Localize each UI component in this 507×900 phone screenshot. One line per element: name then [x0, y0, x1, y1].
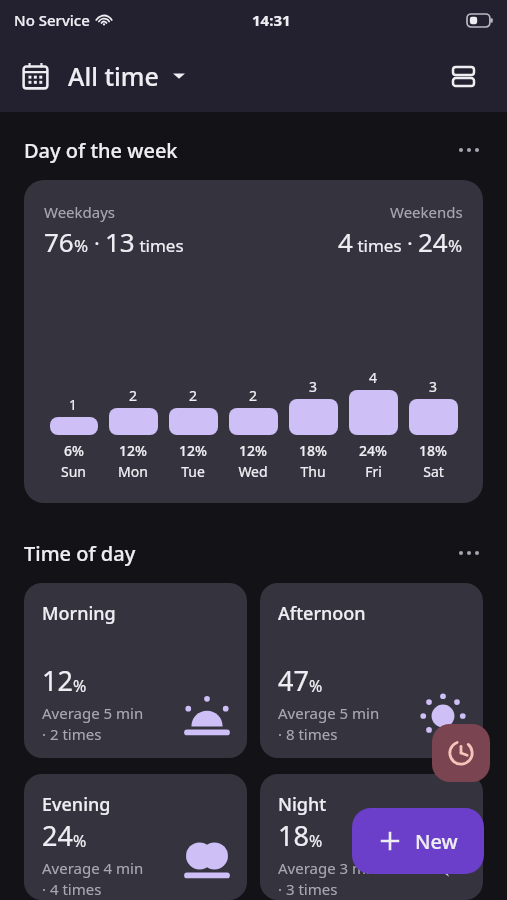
- staticText: 24: [418, 224, 448, 259]
- staticText: 18%: [299, 441, 327, 460]
- staticText: 3: [429, 377, 438, 396]
- staticText: Mon: [118, 462, 148, 481]
- staticText: times: [353, 234, 402, 257]
- staticText: 24: [42, 817, 73, 854]
- staticText: · 3 times: [278, 879, 338, 899]
- staticText: Evening: [42, 792, 111, 817]
- button[interactable]: Weekdays: [24, 180, 483, 503]
- button[interactable]: Evening: [24, 774, 247, 900]
- staticText: times: [135, 234, 184, 257]
- staticText: 18: [278, 817, 309, 854]
- staticText: 2: [249, 386, 258, 405]
- staticText: 12%: [179, 441, 207, 460]
- staticText: ·: [89, 230, 105, 257]
- staticText: Fri: [365, 462, 382, 481]
- staticText: · 4 times: [42, 879, 102, 899]
- button[interactable]: Afternoon: [260, 583, 483, 758]
- staticText: 4: [369, 368, 378, 387]
- staticText: Average 5 min: [42, 703, 144, 723]
- button[interactable]: New: [352, 808, 484, 874]
- staticText: Morning: [42, 601, 116, 626]
- staticText: Weekends: [390, 202, 463, 222]
- staticText: Wed: [238, 462, 268, 481]
- staticText: Time of day: [24, 540, 136, 567]
- staticText: 3: [309, 377, 318, 396]
- staticText: Thu: [300, 462, 326, 481]
- staticText: Night: [278, 792, 327, 817]
- staticText: 1: [69, 395, 78, 414]
- staticText: 2: [189, 386, 198, 405]
- staticText: Day of the week: [24, 137, 178, 164]
- staticText: Sat: [423, 462, 444, 481]
- staticText: 76: [44, 224, 74, 259]
- staticText: 47: [278, 662, 309, 699]
- button[interactable]: Morning: [24, 583, 247, 758]
- staticText: · 8 times: [278, 724, 338, 744]
- staticText: All time: [68, 59, 159, 93]
- button[interactable]: Start timer: [432, 724, 490, 782]
- staticText: ·: [402, 230, 418, 257]
- staticText: 13: [105, 224, 135, 259]
- staticText: %: [448, 234, 463, 257]
- staticText: Sun: [61, 462, 86, 481]
- staticText: · 2 times: [42, 724, 102, 744]
- staticText: 6%: [64, 441, 84, 460]
- staticText: Average 3 min: [278, 858, 380, 878]
- staticText: 12%: [239, 441, 267, 460]
- staticText: Average 4 min: [42, 858, 144, 878]
- staticText: 12%: [119, 441, 147, 460]
- staticText: 14:31: [252, 10, 291, 30]
- button[interactable]: Night: [260, 774, 483, 900]
- button[interactable]: All time: [22, 55, 185, 97]
- staticText: Tue: [181, 462, 205, 481]
- staticText: Weekdays: [44, 202, 116, 222]
- staticText: Afternoon: [278, 601, 366, 626]
- button[interactable]: More options for Time of day: [451, 535, 487, 571]
- staticText: No Service: [14, 10, 90, 30]
- button[interactable]: More options for Day of the week: [451, 132, 487, 168]
- button[interactable]: View options: [441, 54, 485, 98]
- staticText: 24%: [359, 441, 387, 460]
- staticText: 4: [338, 224, 353, 259]
- staticText: %: [309, 830, 323, 852]
- staticText: 2: [129, 386, 138, 405]
- staticText: 12: [42, 662, 73, 699]
- staticText: %: [73, 830, 87, 852]
- staticText: Average 5 min: [278, 703, 380, 723]
- staticText: %: [74, 234, 89, 257]
- staticText: New: [415, 828, 458, 855]
- staticText: 18%: [419, 441, 447, 460]
- staticText: %: [309, 675, 323, 697]
- staticText: %: [73, 675, 87, 697]
